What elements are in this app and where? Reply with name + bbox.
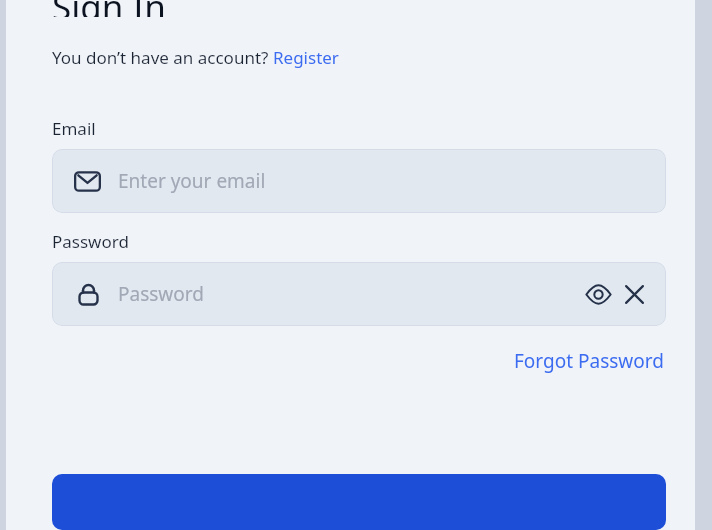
staticText: Forgot Password <box>514 348 664 374</box>
staticText: Enter your email <box>118 168 266 194</box>
button[interactable]: Register <box>273 46 339 69</box>
staticText: Password <box>52 230 129 253</box>
button[interactable]: Clear password <box>616 276 652 312</box>
staticText: You don’t have an account? <box>52 46 273 69</box>
staticText: Register <box>273 46 339 69</box>
button[interactable]: Forgot Password <box>512 344 666 378</box>
button[interactable]: Password <box>52 262 666 326</box>
staticText: Email <box>52 117 96 140</box>
staticText: Sign In <box>52 0 166 17</box>
button[interactable]: Sign In <box>52 474 666 530</box>
staticText: Password <box>118 281 580 307</box>
button[interactable]: Enter your email <box>52 149 666 213</box>
button[interactable]: Show password <box>580 276 616 312</box>
